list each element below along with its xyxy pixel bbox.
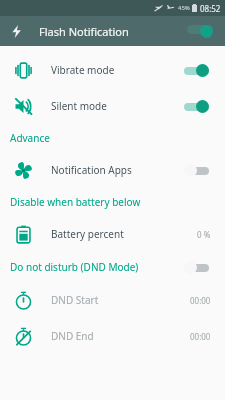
button[interactable]: Toggle — [182, 62, 211, 79]
button[interactable]: DND End — [0, 318, 225, 354]
button[interactable]: Silent mode — [0, 88, 225, 124]
staticText: 00:00 — [190, 295, 211, 306]
button[interactable]: Do not disturb (DND Mode) — [0, 252, 225, 282]
button[interactable]: DND Start — [0, 282, 225, 318]
staticText: 45% — [178, 4, 190, 12]
button[interactable]: Notification Apps — [0, 152, 225, 188]
staticText: Silent mode — [51, 99, 107, 113]
staticText: DND End — [51, 329, 94, 343]
staticText: Do not disturb (DND Mode) — [10, 260, 139, 274]
staticText: Battery percent — [51, 227, 124, 241]
staticText: Disable when battery below — [10, 195, 141, 209]
button[interactable]: Toggle Flash Notification — [185, 23, 215, 40]
staticText: DND Start — [51, 293, 99, 307]
staticText: Flash Notification — [39, 24, 129, 39]
staticText: 0 % — [197, 229, 211, 240]
button[interactable]: Toggle — [182, 98, 211, 115]
staticText: 08:52 — [200, 3, 221, 14]
staticText: Notification Apps — [51, 163, 132, 177]
staticText: 00:00 — [190, 331, 211, 342]
staticText: Advance — [10, 131, 50, 145]
button[interactable]: Toggle — [182, 162, 211, 179]
staticText: Vibrate mode — [51, 63, 115, 77]
button[interactable]: Vibrate mode — [0, 52, 225, 88]
button[interactable]: Toggle — [182, 259, 211, 276]
button[interactable]: Battery percent — [0, 216, 225, 252]
